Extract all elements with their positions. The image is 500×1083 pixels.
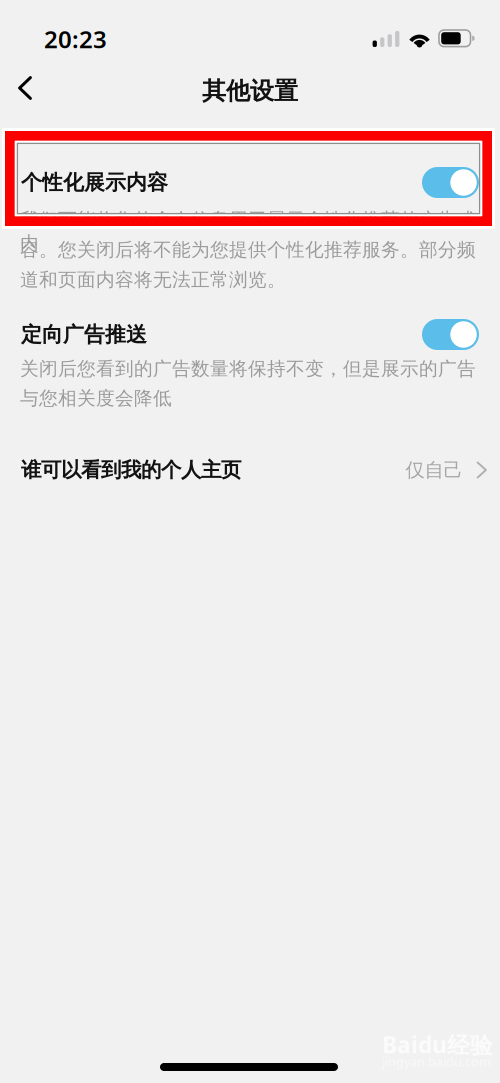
button[interactable]: 谁可以看到我的个人主页 bbox=[21, 456, 487, 484]
staticText: 我们可能将您的个人信息用于展示个性化推荐的广告或内 bbox=[20, 208, 476, 255]
staticText: 20:23 bbox=[44, 23, 107, 55]
button[interactable]: Back bbox=[4, 64, 46, 112]
button[interactable]: 定向广告推送 bbox=[21, 319, 479, 350]
staticText: 定向广告推送 bbox=[21, 321, 147, 348]
staticText: 谁可以看到我的个人主页 bbox=[21, 457, 241, 483]
staticText: Baidu经验 bbox=[382, 1029, 493, 1060]
button[interactable]: 个性化展示内容 bbox=[21, 167, 479, 198]
staticText: 关闭后您看到的广告数量将保持不变，但是展示的广告与您相关度会降低 bbox=[20, 357, 476, 410]
staticText: 仅自己 bbox=[405, 458, 462, 482]
staticText: 道和页面内容将无法正常浏览。 bbox=[20, 268, 286, 291]
staticText: 个性化展示内容 bbox=[21, 169, 168, 196]
staticText: 其他设置 bbox=[202, 76, 298, 106]
staticText: 容。您关闭后将不能为您提供个性化推荐服务。部分频 bbox=[20, 238, 476, 261]
